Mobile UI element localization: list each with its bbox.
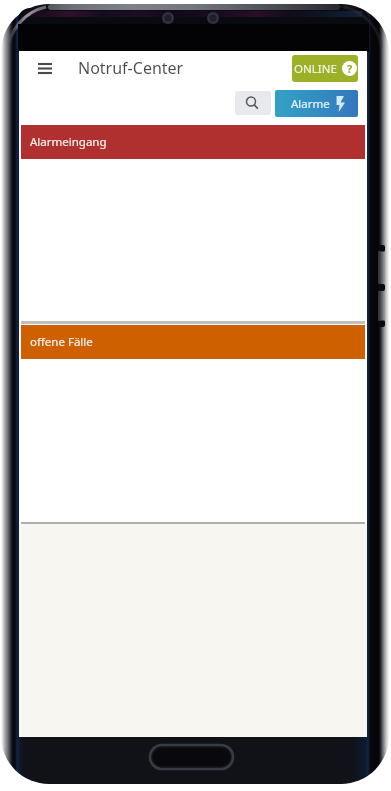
staticText: ONLINE <box>294 61 337 77</box>
staticText: offene Fälle <box>30 334 93 350</box>
button[interactable]: Alarmeingang <box>21 125 365 159</box>
staticText: Alarmeingang <box>30 134 107 150</box>
button[interactable]: Search <box>235 91 271 115</box>
button[interactable]: ONLINE <box>292 55 358 82</box>
button[interactable]: Alarme <box>275 90 358 117</box>
staticText: ? <box>347 61 353 76</box>
button[interactable]: offene Fälle <box>21 325 365 359</box>
button[interactable]: Open navigation menu <box>29 52 61 84</box>
staticText: Notruf-Center <box>78 57 184 79</box>
staticText: Alarme <box>291 96 330 112</box>
